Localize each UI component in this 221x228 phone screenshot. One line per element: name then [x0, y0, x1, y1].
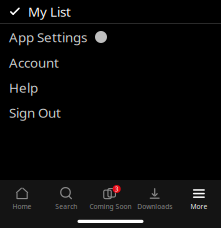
button[interactable]: 3 [88, 184, 133, 214]
button[interactable]: App Settings [0, 24, 221, 50]
button[interactable]: My List [0, 0, 221, 23]
staticText: Coming Soon [89, 202, 131, 211]
button[interactable]: Downloads [133, 184, 177, 214]
button[interactable]: Home [0, 184, 44, 214]
staticText: Help [9, 79, 38, 96]
button[interactable]: Account [0, 50, 221, 75]
staticText: More [190, 202, 207, 211]
button[interactable]: Help [0, 75, 221, 100]
staticText: Home [13, 202, 32, 211]
button[interactable]: More [177, 184, 221, 214]
staticText: 3 [115, 184, 119, 193]
staticText: Sign Out [9, 104, 61, 121]
staticText: My List [28, 3, 71, 20]
button[interactable]: Sign Out [0, 100, 221, 125]
staticText: Search [55, 202, 77, 211]
staticText: App Settings [9, 28, 87, 46]
staticText: Downloads [137, 202, 172, 211]
button[interactable]: Search [44, 184, 88, 214]
staticText: Account [9, 54, 59, 71]
